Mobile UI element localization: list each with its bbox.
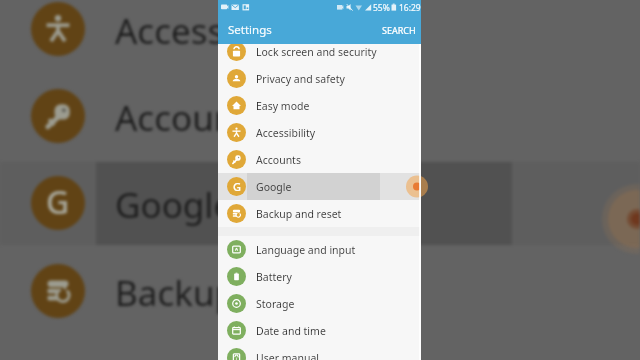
button[interactable]: Accessibility <box>218 119 421 146</box>
button[interactable]: Backup and reset <box>218 200 421 227</box>
staticText: Backup and reset <box>256 207 342 221</box>
staticText: Access <box>115 7 225 55</box>
staticText: Backup <box>115 269 237 317</box>
staticText: G <box>233 179 241 194</box>
staticText: Accounts <box>256 153 301 167</box>
staticText: Google <box>115 181 234 229</box>
button[interactable]: Accounts <box>218 146 421 173</box>
button[interactable]: Lock screen and security <box>218 38 421 65</box>
staticText: User manual <box>256 351 319 360</box>
button[interactable]: User manual <box>218 344 421 360</box>
staticText: G <box>46 180 70 224</box>
button[interactable]: Language and input <box>218 236 421 263</box>
staticText: Accessibility <box>256 126 316 140</box>
staticText: Accour <box>115 94 229 142</box>
staticText: Storage <box>256 297 295 311</box>
button[interactable]: Storage <box>218 290 421 317</box>
button[interactable]: Privacy and safety <box>218 65 421 92</box>
button[interactable]: Date and time <box>218 317 421 344</box>
staticText: Date and time <box>256 324 326 338</box>
staticText: Settings <box>228 22 272 38</box>
staticText: 55% <box>373 2 390 14</box>
staticText: SEARCH <box>382 24 416 36</box>
button[interactable]: SEARCH <box>377 19 421 41</box>
staticText: Privacy and safety <box>256 72 345 86</box>
staticText: Lock screen and security <box>256 45 377 59</box>
staticText: Battery <box>256 270 292 284</box>
staticText: 16:29 <box>399 2 421 14</box>
button[interactable]: Battery <box>218 263 421 290</box>
staticText: Easy mode <box>256 99 310 113</box>
button[interactable]: Easy mode <box>218 92 421 119</box>
staticText: Google <box>256 180 292 194</box>
button[interactable]: G <box>218 173 421 200</box>
staticText: Language and input <box>256 243 356 257</box>
